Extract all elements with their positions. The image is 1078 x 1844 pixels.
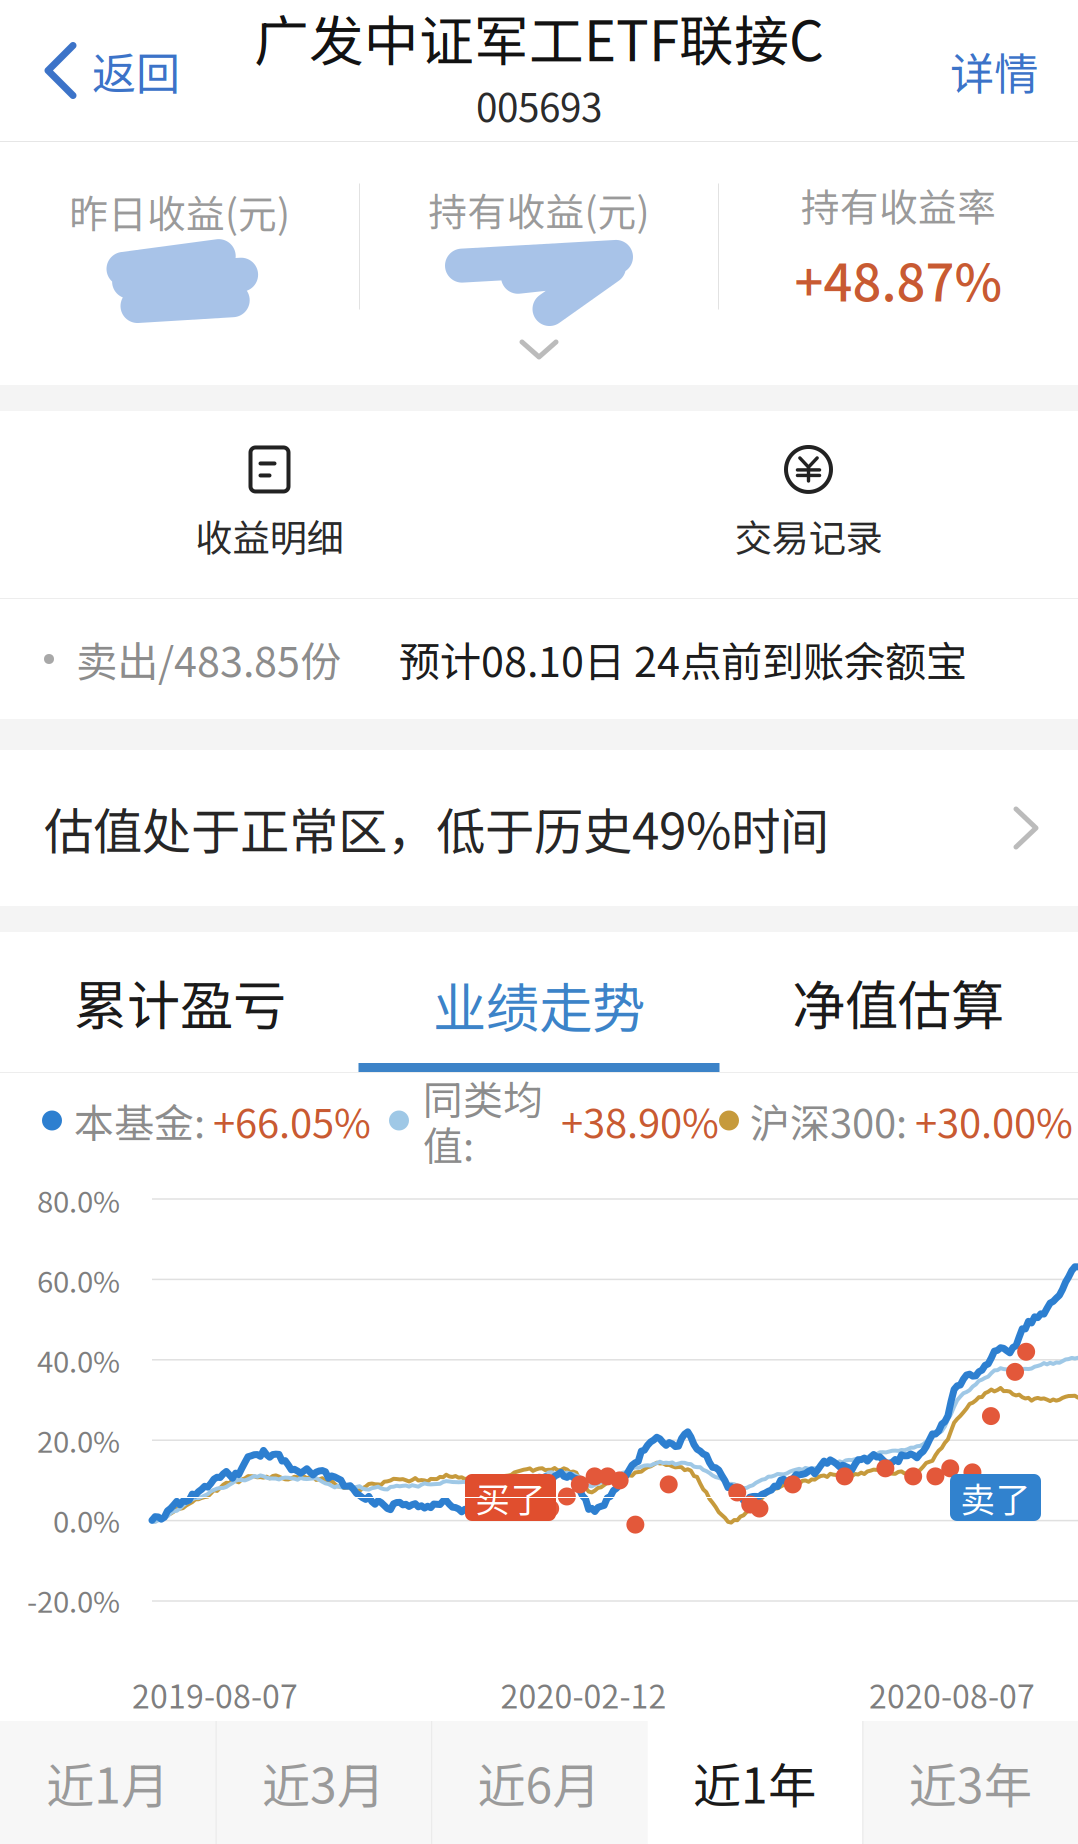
button[interactable]: 收益明细 [0,411,539,598]
staticText: 预计08.10日 24点前到账余额宝 [399,629,967,689]
button[interactable]: 交易记录 [539,411,1078,598]
staticText: 80.0% [37,1179,120,1221]
button[interactable]: 业绩走势 [359,932,718,1072]
staticText: 业绩走势 [433,966,645,1043]
staticText: 累计盈亏 [74,963,286,1041]
staticText: 40.0% [37,1339,120,1381]
staticText: 20.0% [37,1419,120,1461]
button[interactable]: 详情 [924,0,1078,141]
staticText: 近3月 [262,1748,385,1817]
staticText: 005693 [476,77,602,133]
button[interactable]: 近1月 [0,1721,216,1844]
button[interactable]: 累计盈亏 [0,932,359,1072]
button[interactable]: 近6月 [431,1721,647,1844]
staticText: 买了 [475,1472,545,1523]
staticText: +38.90% [561,1091,719,1149]
staticText: 净值估算 [792,963,1004,1041]
button[interactable]: 近3年 [862,1721,1078,1844]
staticText: +48.87% [794,243,1002,316]
button[interactable]: 近1年 [647,1721,862,1844]
staticText: +30.00% [915,1091,1073,1149]
staticText: 持有收益率 [801,177,996,233]
staticText: 收益明细 [195,508,343,563]
staticText: +66.05% [213,1091,371,1149]
staticText: 交易记录 [734,508,882,563]
staticText: 广发中证军工ETF联接C [254,0,824,77]
staticText: 返回 [92,39,180,102]
staticText: 0.0% [53,1499,120,1541]
staticText: 估值处于正常区，低于历史49%时间 [44,792,829,864]
button[interactable]: 估值处于正常区，低于历史49%时间 [0,750,1078,906]
staticText: 近3年 [909,1748,1032,1817]
staticText: -20.0% [27,1579,120,1621]
staticText: 近1年 [693,1748,816,1817]
staticText: 卖出/483.85份 [76,629,341,689]
staticText: 持有收益(元) [428,181,649,237]
staticText: 值: [423,1114,474,1172]
staticText: 近1月 [46,1748,169,1817]
staticText: 2019-08-07 [132,1671,298,1718]
staticText: 2020-08-07 [869,1671,1035,1718]
staticText: 2020-02-12 [500,1671,666,1718]
button[interactable]: 净值估算 [718,932,1077,1072]
staticText: 60.0% [37,1259,120,1301]
staticText: 卖了 [960,1472,1030,1523]
staticText: 详情 [950,39,1038,102]
button[interactable]: 返回 [0,0,206,141]
staticText: 本基金: [74,1091,205,1149]
staticText: 近6月 [477,1748,600,1817]
staticText: 沪深300: [750,1091,907,1149]
staticText: 昨日收益(元) [69,183,290,239]
button[interactable]: 近3月 [216,1721,431,1844]
staticText: 同类均 [423,1068,543,1126]
